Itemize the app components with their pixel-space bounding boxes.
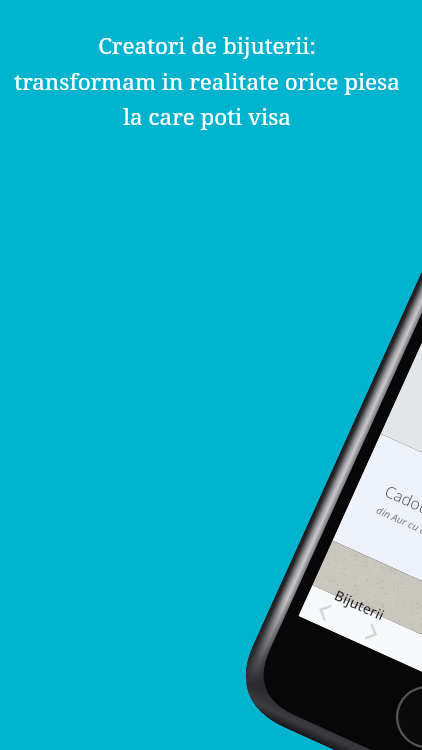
- staticText: Creatori de bijuterii: transformam in re…: [14, 30, 400, 131]
